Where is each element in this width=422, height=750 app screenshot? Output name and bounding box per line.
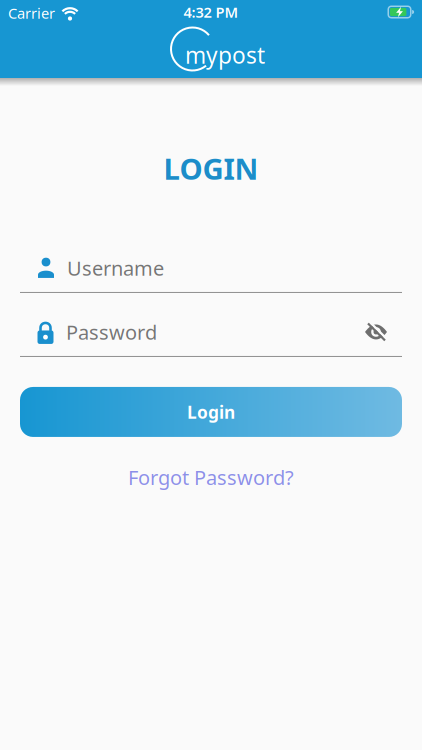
staticText: Username: [67, 255, 164, 281]
staticText: Carrier: [8, 3, 55, 23]
button[interactable]: Username: [0, 255, 422, 293]
staticText: 4:32 PM: [183, 2, 238, 22]
staticText: Login: [187, 400, 235, 423]
staticText: Password: [66, 319, 157, 345]
staticText: Forgot Password?: [128, 464, 294, 491]
staticText: mypost: [185, 40, 265, 70]
button[interactable]: Show password: [364, 320, 388, 344]
button[interactable]: Login: [20, 387, 402, 437]
button[interactable]: Forgot Password?: [128, 464, 294, 491]
button[interactable]: Password: [0, 319, 422, 357]
staticText: LOGIN: [163, 149, 258, 188]
